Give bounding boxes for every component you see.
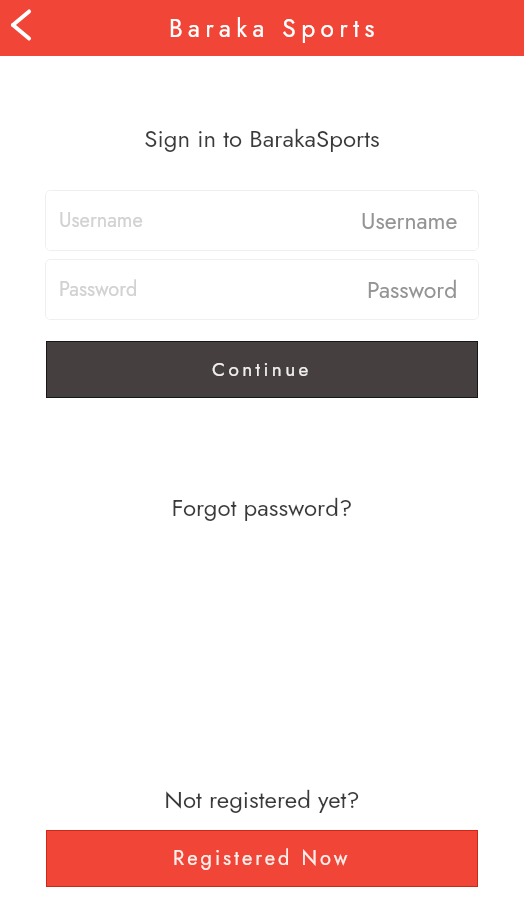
button[interactable]: Back	[0, 2, 44, 48]
button[interactable]: Registered Now	[47, 831, 477, 886]
staticText: Password	[59, 275, 138, 304]
staticText: Baraka Sports	[169, 11, 380, 46]
staticText: Password	[367, 273, 458, 306]
staticText: Continue	[212, 356, 312, 383]
staticText: Registered Now	[173, 844, 351, 873]
button[interactable]: Continue	[47, 342, 477, 397]
staticText: Sign in to BarakaSports	[0, 121, 524, 156]
button[interactable]: Password	[45, 259, 479, 320]
staticText: Not registered yet?	[0, 782, 524, 817]
staticText: Username	[59, 206, 143, 235]
button[interactable]: Forgot password?	[0, 490, 524, 525]
staticText: Username	[361, 204, 458, 237]
button[interactable]: Username	[45, 190, 479, 251]
